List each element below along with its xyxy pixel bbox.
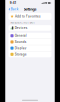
button[interactable]: Sounds — [8, 39, 51, 45]
staticText: Devices — [15, 26, 28, 30]
button[interactable]: Back — [5, 6, 20, 12]
button[interactable]: Storage — [8, 51, 51, 57]
staticText: Storage — [15, 52, 27, 56]
staticText: General — [15, 34, 27, 37]
button[interactable]: General — [8, 33, 51, 39]
staticText: PERSONAL HOTSPOT — [10, 21, 35, 24]
staticText: Back — [11, 7, 19, 11]
staticText: Display — [15, 46, 27, 50]
staticText: Settings — [23, 7, 36, 11]
button[interactable]: Add to Favorites — [8, 13, 51, 20]
button[interactable]: Display — [8, 45, 51, 51]
staticText: Add to Favorites — [15, 15, 41, 18]
button[interactable]: Devices — [8, 25, 51, 31]
staticText: 9:41 — [10, 1, 16, 5]
staticText: Sounds — [15, 40, 27, 44]
